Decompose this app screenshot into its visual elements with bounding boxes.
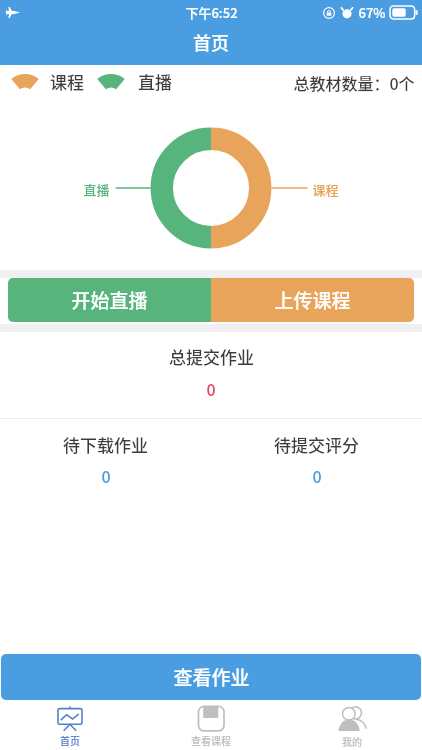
staticText: 开始直播 [71,286,148,314]
staticText: 直播 [138,69,172,94]
staticText: 课程 [50,69,84,94]
staticText: 待提交评分 [274,432,359,457]
button[interactable]: 待下载作业 [0,419,211,505]
button[interactable]: 查看作业 [1,654,421,700]
staticText: 下午6:52 [185,3,238,22]
staticText: 待下载作业 [63,432,148,457]
staticText: 查看作业 [173,663,250,691]
button[interactable]: 开始直播 [8,278,211,322]
other: Courses [198,706,224,731]
button[interactable]: 待提交评分 [211,419,422,505]
button[interactable]: Profile [281,700,422,750]
staticText: 上传课程 [274,286,351,314]
staticText: 0 [206,377,216,400]
staticText: 查看课程 [191,733,231,747]
button[interactable]: 上传课程 [211,278,414,322]
other: Home [57,706,83,731]
staticText: 0 [312,464,322,487]
button[interactable]: Home [0,700,140,750]
staticText: 首页 [60,733,80,747]
staticText: 总提交作业 [169,344,254,369]
staticText: 我的 [342,734,362,748]
button[interactable]: Courses [140,700,281,750]
staticText: 课程 [312,180,339,199]
button[interactable]: 总提交作业 [0,332,422,418]
staticText: 总教材数量：0个 [293,71,415,94]
other: Profile [338,706,366,732]
other: Airplane mode [6,7,20,18]
staticText: 67% [358,3,386,22]
staticText: 首页 [193,29,229,55]
staticText: 直播 [83,180,110,199]
staticText: 0 [101,464,111,487]
